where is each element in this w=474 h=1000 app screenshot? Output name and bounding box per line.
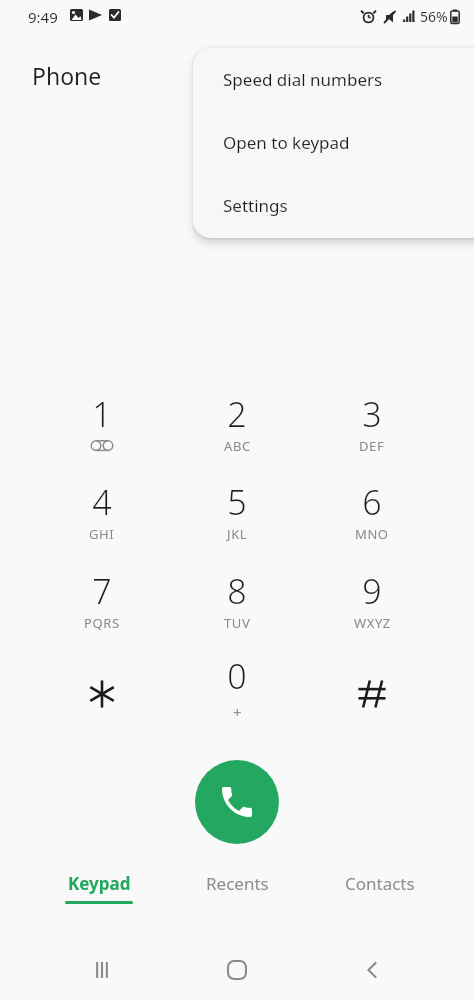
button[interactable]: Back	[340, 948, 404, 992]
button[interactable]: 2	[178, 391, 296, 473]
staticText: 2	[227, 391, 247, 437]
button[interactable]: 6	[313, 479, 431, 561]
staticText: PQRS	[84, 614, 120, 632]
staticText: MNO	[355, 525, 389, 543]
staticText: Keypad	[68, 872, 131, 895]
staticText: Open to keypad	[223, 131, 350, 154]
staticText: Settings	[223, 194, 288, 217]
button[interactable]	[43, 653, 161, 735]
staticText: GHI	[89, 525, 115, 543]
staticText: 3	[362, 391, 382, 437]
staticText: 4	[92, 479, 112, 525]
button[interactable]: Contacts	[312, 872, 448, 928]
button[interactable]: Home	[205, 948, 269, 992]
staticText: Speed dial numbers	[223, 68, 383, 91]
button[interactable]: Recents	[70, 948, 134, 992]
button[interactable]: 4	[43, 479, 161, 561]
staticText: 0	[227, 653, 247, 699]
button[interactable]: 9	[313, 568, 431, 650]
staticText: Recents	[206, 872, 269, 895]
button[interactable]: 7	[43, 568, 161, 650]
button[interactable]: Recents	[169, 872, 305, 928]
staticText: DEF	[359, 437, 385, 455]
button[interactable]: 1	[43, 391, 161, 473]
staticText: 1	[92, 391, 112, 437]
button[interactable]: 3	[313, 391, 431, 473]
staticText: 56%	[420, 7, 448, 26]
button[interactable]: 0	[178, 653, 296, 735]
staticText: JKL	[227, 525, 248, 543]
staticText: 6	[362, 479, 382, 525]
staticText: 7	[92, 568, 112, 614]
staticText: 8	[227, 568, 247, 614]
button[interactable]: Call	[195, 760, 279, 844]
staticText: WXYZ	[354, 614, 391, 632]
button[interactable]	[313, 653, 431, 735]
button[interactable]: 8	[178, 568, 296, 650]
button[interactable]: 5	[178, 479, 296, 561]
button[interactable]: Keypad	[31, 872, 167, 928]
staticText: Phone	[32, 60, 102, 91]
staticText: 5	[227, 479, 247, 525]
staticText: 9	[362, 568, 382, 614]
staticText: 9:49	[28, 7, 58, 27]
button[interactable]: Settings	[193, 174, 474, 237]
button[interactable]: Speed dial numbers	[193, 48, 474, 111]
staticText: TUV	[224, 614, 251, 632]
staticText: Contacts	[345, 872, 415, 895]
staticText: +	[233, 702, 242, 722]
staticText: ABC	[224, 437, 251, 455]
button[interactable]: Open to keypad	[193, 111, 474, 174]
